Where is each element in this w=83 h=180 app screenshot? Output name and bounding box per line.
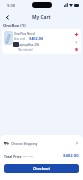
staticText: (incl. VAT) [23,155,33,158]
staticText: Choose Shipping [11,141,38,145]
staticText: Checkout [33,166,51,171]
staticText: $402.00 [29,36,44,41]
button[interactable]: Back [2,12,12,22]
staticText: 9:08 [7,3,15,8]
staticText: LaptopBox 256 [18,43,40,47]
staticText: OnePlus Nord [14,32,35,36]
staticText: $402.00 [63,153,79,159]
button[interactable]: OnePlus Nord [2,29,81,54]
button[interactable]: Choose Shipping [0,141,83,145]
button[interactable]: Add one [74,32,79,37]
staticText: 1 [75,40,78,45]
button[interactable]: Checkout [4,164,79,173]
button[interactable]: Delete item [74,47,79,52]
staticText: My Cart [32,14,51,21]
staticText: OneBox (1) [3,23,26,29]
staticText: (No include) [18,48,33,52]
staticText: blue void [14,37,26,41]
staticText: Total Price [4,154,22,159]
